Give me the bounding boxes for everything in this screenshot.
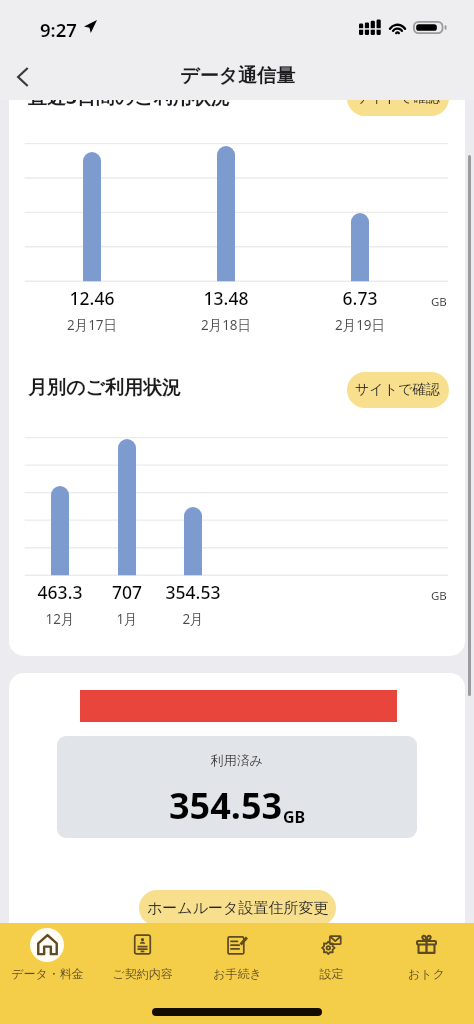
button[interactable]: サイトで確認	[347, 80, 449, 116]
staticText: データ・料金	[0, 966, 95, 981]
staticText: 354.53	[169, 781, 283, 830]
staticText: GB	[431, 294, 447, 310]
staticText: 707	[67, 580, 187, 604]
staticText: 6.73	[300, 286, 420, 310]
staticText: 直近3日間のご利用状況	[28, 84, 230, 110]
staticText: ご契約内容	[95, 966, 190, 981]
staticText: おトク	[379, 966, 474, 981]
button[interactable]: Back	[0, 55, 44, 99]
staticText: 463.3	[0, 580, 120, 604]
staticText: 9:27	[40, 17, 77, 42]
staticText: 1月	[67, 610, 187, 628]
staticText: 12月	[0, 610, 120, 628]
staticText: データ通信量	[180, 64, 295, 88]
button[interactable]: お手続き	[190, 924, 285, 1000]
staticText: 月別のご利用状況	[28, 376, 181, 400]
staticText: GB	[431, 588, 447, 604]
staticText: GB	[283, 806, 306, 828]
staticText: サイトで確認	[355, 89, 441, 107]
staticText: ホームルータ設置住所変更	[147, 899, 329, 918]
button[interactable]: 設定	[284, 924, 379, 1000]
staticText: 設定	[284, 966, 379, 981]
button[interactable]: データ・料金	[0, 924, 95, 1000]
staticText: 利用済み	[57, 752, 417, 768]
staticText: 2月	[133, 610, 253, 628]
staticText: 2月19日	[300, 316, 420, 334]
staticText: 354.53	[133, 580, 253, 604]
staticText: 2月18日	[166, 316, 286, 334]
staticText: お手続き	[190, 966, 285, 981]
button[interactable]: サイトで確認	[347, 372, 449, 408]
staticText: 13.48	[166, 286, 286, 310]
button[interactable]: ご契約内容	[95, 924, 190, 1000]
staticText: 12.46	[32, 286, 152, 310]
staticText: 2月17日	[32, 316, 152, 334]
staticText: サイトで確認	[355, 381, 441, 399]
button[interactable]: おトク	[379, 924, 474, 1000]
button[interactable]: ホームルータ設置住所変更	[139, 890, 336, 926]
